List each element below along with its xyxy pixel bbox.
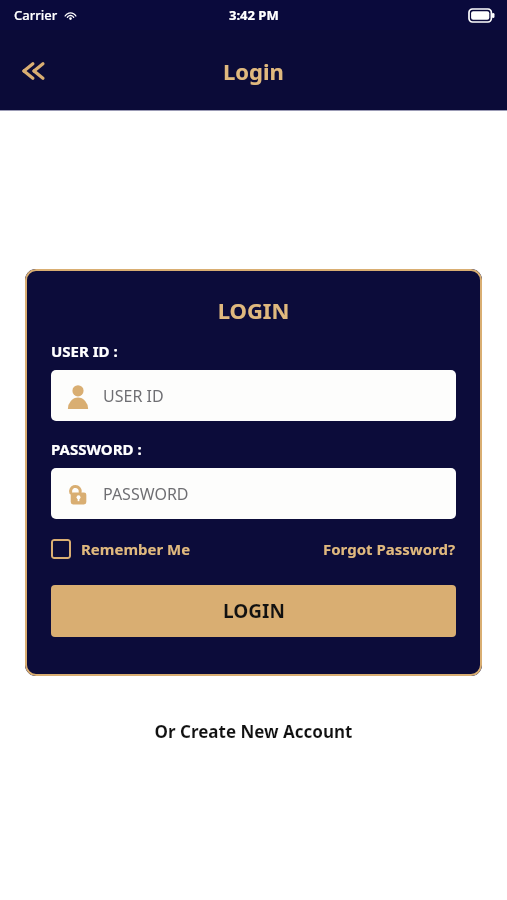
staticText: LOGIN: [51, 295, 456, 325]
button[interactable]: Forgot Password?: [323, 537, 456, 561]
staticText: LOGIN: [223, 598, 285, 624]
staticText: PASSWORD :: [51, 439, 142, 459]
staticText: Remember Me: [81, 539, 191, 559]
button[interactable]: LOGIN: [51, 585, 456, 637]
button[interactable]: Or Create New Account: [0, 714, 507, 749]
staticText: USER ID: [103, 385, 164, 407]
staticText: 3:42 PM: [229, 6, 279, 24]
button[interactable]: USER ID: [51, 370, 456, 421]
staticText: Login: [223, 56, 284, 86]
staticText: PASSWORD: [103, 483, 189, 505]
staticText: USER ID :: [51, 341, 118, 361]
button[interactable]: Remember Me: [51, 539, 191, 559]
button[interactable]: Back: [10, 47, 58, 95]
button[interactable]: PASSWORD: [51, 468, 456, 519]
staticText: Carrier: [14, 6, 58, 24]
